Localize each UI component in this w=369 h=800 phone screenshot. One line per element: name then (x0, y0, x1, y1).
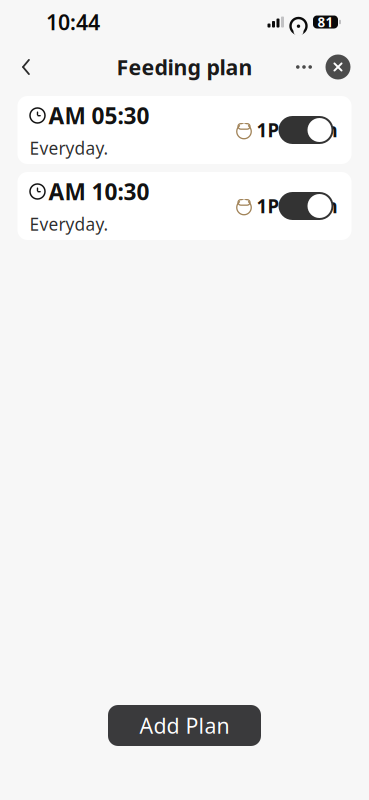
button[interactable]: AM 10:30 (17, 172, 351, 240)
staticText: 1Portion (256, 118, 337, 142)
button[interactable]: Enable feeding time (278, 192, 333, 220)
button[interactable]: AM 05:30 (17, 96, 351, 164)
button[interactable]: Add Plan (108, 705, 261, 746)
staticText: Everyday. (29, 212, 108, 235)
staticText: Feeding plan (116, 53, 252, 81)
staticText: 1Portion (256, 194, 337, 218)
staticText: 81 (317, 13, 333, 31)
staticText: Everyday. (29, 136, 108, 159)
staticText: Add Plan (139, 711, 229, 740)
staticText: 10:44 (46, 8, 100, 36)
button[interactable]: Back (6, 47, 46, 87)
staticText: AM 10:30 (48, 176, 149, 206)
button[interactable]: Close (321, 50, 355, 84)
button[interactable]: More options (287, 50, 321, 84)
button[interactable]: Enable feeding time (278, 116, 333, 144)
staticText: AM 05:30 (48, 100, 149, 130)
